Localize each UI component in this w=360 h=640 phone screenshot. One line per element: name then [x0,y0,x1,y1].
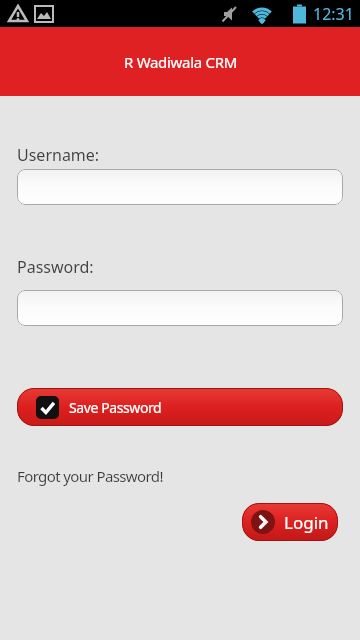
button[interactable] [17,169,343,205]
button[interactable] [17,290,343,326]
staticText: Login [284,511,329,534]
staticText: Save Password [69,398,162,417]
staticText: Password: [17,256,94,278]
staticText: Username: [17,144,100,166]
button[interactable]: Forgot your Password! [17,466,163,486]
button[interactable]: Login [242,503,338,541]
staticText: 12:31 [313,3,354,25]
staticText: R Wadiwala CRM [124,52,237,72]
button[interactable]: Save Password [17,388,343,426]
